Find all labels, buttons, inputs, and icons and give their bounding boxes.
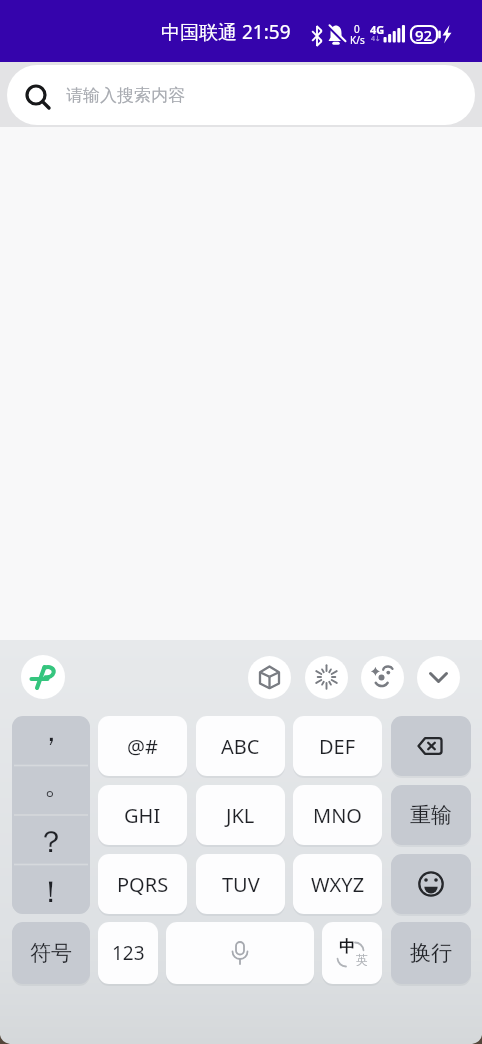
button[interactable]: 重输 (391, 785, 471, 845)
staticText: 123 (112, 940, 145, 966)
staticText: TUV (222, 871, 260, 898)
button[interactable]: MNO (293, 785, 382, 845)
button[interactable] (361, 656, 404, 699)
button[interactable]: 换行 (391, 922, 471, 984)
staticText: 请输入搜索内容 (66, 85, 185, 106)
staticText: 92 (415, 25, 433, 43)
staticText: 换行 (410, 940, 452, 966)
staticText: 中国联通 21:59 (161, 19, 291, 45)
staticText: 中 (339, 937, 355, 957)
button[interactable]: 符号 (12, 922, 90, 984)
staticText: ！ (36, 873, 66, 911)
button[interactable]: ， (12, 716, 90, 914)
staticText: MNO (313, 802, 362, 829)
button[interactable]: JKL (196, 785, 285, 845)
staticText: GHI (124, 802, 161, 829)
staticText: 英 (356, 952, 368, 967)
button[interactable]: PQRS (98, 854, 187, 914)
staticText: ， (37, 716, 65, 749)
button[interactable]: 123 (98, 922, 158, 984)
staticText: 0 (354, 22, 360, 36)
staticText: @# (127, 733, 158, 760)
button[interactable] (305, 656, 348, 699)
staticText: 重输 (410, 802, 452, 828)
staticText: 符号 (30, 940, 72, 966)
staticText: 。 (44, 767, 72, 802)
button[interactable]: ABC (196, 716, 285, 776)
button[interactable] (391, 854, 471, 914)
button[interactable] (166, 922, 314, 984)
button[interactable]: 中 (322, 922, 382, 984)
staticText: 4↓ (371, 34, 381, 44)
button[interactable] (417, 656, 460, 699)
button[interactable] (391, 716, 471, 776)
button[interactable]: TUV (196, 854, 285, 914)
staticText: WXYZ (311, 871, 365, 898)
button[interactable] (21, 655, 65, 699)
staticText: K/s (350, 33, 365, 46)
staticText: JKL (226, 802, 255, 829)
button[interactable]: WXYZ (293, 854, 382, 914)
staticText: DEF (319, 733, 356, 760)
button[interactable]: 请输入搜索内容 (7, 65, 475, 125)
button[interactable]: DEF (293, 716, 382, 776)
button[interactable] (248, 656, 291, 699)
staticText: PQRS (117, 871, 169, 898)
staticText: 4G (370, 22, 385, 36)
button[interactable]: GHI (98, 785, 187, 845)
staticText: ABC (221, 733, 260, 760)
button[interactable]: @# (98, 716, 187, 776)
staticText: ？ (36, 823, 66, 861)
